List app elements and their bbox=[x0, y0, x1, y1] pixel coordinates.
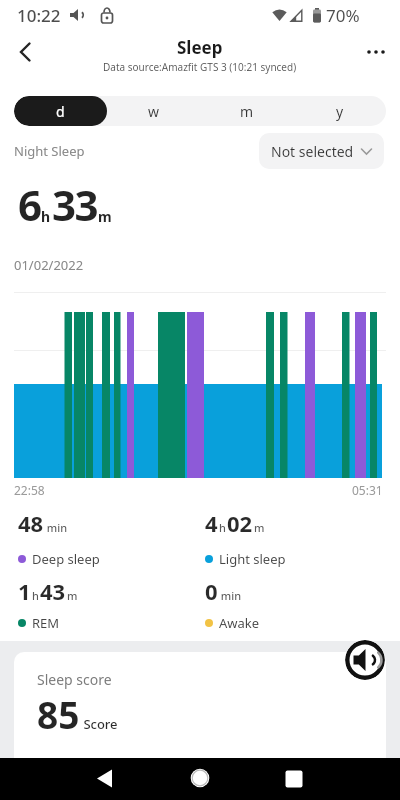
button[interactable]: Not selected bbox=[259, 133, 384, 169]
staticText: 1 bbox=[18, 576, 31, 606]
staticText: y bbox=[336, 102, 344, 121]
staticText: Not selected bbox=[271, 142, 354, 161]
button[interactable]: d bbox=[14, 96, 107, 126]
staticText: Sleep bbox=[177, 36, 223, 59]
staticText: 02 bbox=[227, 508, 253, 538]
button[interactable]: m bbox=[200, 96, 293, 126]
button[interactable] bbox=[345, 640, 385, 680]
staticText: h bbox=[41, 207, 51, 226]
staticText: h bbox=[219, 520, 226, 535]
staticText: 10:22 bbox=[17, 4, 61, 27]
staticText: 33 bbox=[52, 176, 98, 233]
staticText: Light sleep bbox=[219, 550, 286, 568]
staticText: Deep sleep bbox=[32, 550, 100, 568]
button[interactable]: w bbox=[107, 96, 200, 126]
staticText: m bbox=[98, 207, 112, 226]
button[interactable] bbox=[274, 759, 314, 799]
button[interactable] bbox=[85, 758, 125, 798]
staticText: m bbox=[240, 102, 254, 121]
staticText: m bbox=[67, 588, 78, 603]
staticText: 85 bbox=[37, 689, 80, 739]
staticText: Score bbox=[80, 715, 118, 733]
staticText: 0 bbox=[205, 576, 218, 606]
staticText: d bbox=[56, 102, 65, 121]
staticText: 01/02/2022 bbox=[14, 256, 84, 274]
staticText: Night Sleep bbox=[14, 142, 85, 160]
button[interactable] bbox=[180, 758, 220, 798]
staticText: 43 bbox=[40, 576, 66, 606]
staticText: w bbox=[148, 102, 160, 121]
staticText: Awake bbox=[219, 614, 260, 632]
staticText: 22:58 bbox=[14, 482, 45, 498]
staticText: min bbox=[44, 520, 68, 535]
staticText: 48 bbox=[18, 508, 44, 538]
staticText: 6 bbox=[18, 176, 41, 233]
staticText: Sleep score bbox=[37, 670, 112, 689]
staticText: Data source:Amazfit GTS 3 (10:21 synced) bbox=[103, 60, 297, 74]
staticText: 4 bbox=[205, 508, 218, 538]
staticText: m bbox=[254, 520, 265, 535]
button[interactable] bbox=[6, 32, 46, 72]
button[interactable]: Sleep score bbox=[14, 652, 386, 758]
button[interactable] bbox=[356, 32, 396, 72]
staticText: h bbox=[32, 588, 39, 603]
staticText: REM bbox=[32, 614, 60, 632]
staticText: 70% bbox=[326, 4, 360, 27]
staticText: min bbox=[218, 588, 242, 603]
button[interactable]: y bbox=[293, 96, 386, 126]
staticText: 05:31 bbox=[352, 482, 383, 498]
